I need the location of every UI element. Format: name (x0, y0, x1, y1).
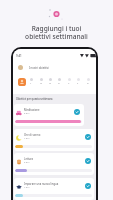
staticText: G (58, 82, 60, 85)
staticText: 2 di 7 (24, 161, 30, 164)
button[interactable]: Completato (85, 134, 91, 140)
staticText: 9:41 (16, 54, 22, 58)
staticText: 1 di 7 (24, 186, 30, 189)
button[interactable]: Imparare una nuova lingua (14, 178, 94, 200)
button[interactable]: Profilo (18, 65, 23, 70)
button[interactable]: Completato (74, 109, 80, 115)
button[interactable]: Completato (85, 158, 91, 164)
staticText: Lettura (24, 157, 34, 161)
button[interactable]: Completato (85, 183, 91, 189)
staticText: I nostri obiettivi (29, 66, 49, 70)
other: Obiettivi (47, 4, 66, 23)
staticText: Raggiungi i tuoi obiettivi settimanali (0, 24, 113, 41)
staticText: Imparare una nuova lingua (24, 182, 59, 186)
staticText: 1 di 7 (24, 137, 30, 140)
staticText: S (77, 82, 79, 85)
staticText: Meditazione (24, 108, 40, 112)
staticText: D (87, 82, 89, 85)
button[interactable]: Ore di sonno (14, 129, 94, 151)
staticText: M (40, 82, 42, 85)
staticText: Obiettivi per questa settimana (16, 97, 53, 100)
button[interactable]: Lettura (14, 153, 94, 175)
staticText: V (68, 82, 70, 85)
button[interactable]: Meditazione (14, 104, 84, 126)
staticText: 5 di 7 (24, 112, 30, 115)
staticText: Ore di sonno (24, 133, 41, 137)
button[interactable]: Aggiungi obiettivo (18, 78, 26, 86)
staticText: L (30, 82, 32, 85)
staticText: M (49, 82, 51, 85)
